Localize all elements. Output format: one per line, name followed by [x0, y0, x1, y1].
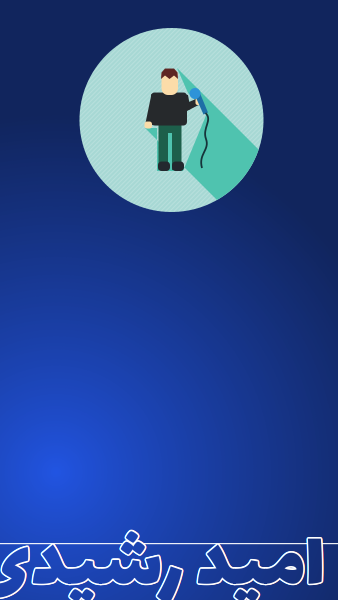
- staticText: امید رشیدی: [0, 505, 324, 600]
- staticText: امید رشیدی: [0, 506, 326, 600]
- staticText: امید رشیدی: [0, 505, 323, 600]
- staticText: امید رشیدی: [0, 504, 325, 600]
- staticText: امید رشیدی: [0, 504, 326, 600]
- staticText: امید رشیدی: [0, 507, 326, 600]
- staticText: امید رشیدی: [0, 505, 326, 600]
- staticText: امید رشیدی: [0, 507, 324, 600]
- staticText: امید رشیدی: [0, 506, 324, 600]
- staticText: امید رشیدی: [0, 504, 324, 600]
- staticText: امید رشیدی: [0, 505, 326, 600]
- staticText: امید رشیدی: [0, 507, 325, 600]
